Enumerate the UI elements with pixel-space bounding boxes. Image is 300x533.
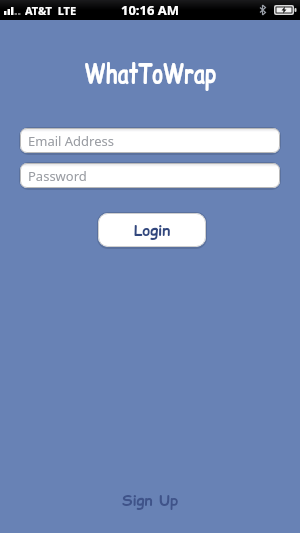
- staticText: AT&T LTE: [25, 3, 77, 18]
- button[interactable]: Sign Up: [118, 486, 182, 515]
- button[interactable]: Login: [98, 213, 206, 247]
- staticText: 10:16 AM: [121, 1, 180, 19]
- staticText: Login: [134, 220, 171, 241]
- button[interactable]: Email Address: [20, 128, 280, 153]
- staticText: Sign Up: [122, 490, 178, 511]
- staticText: Email Address: [28, 132, 114, 150]
- button[interactable]: Password: [20, 163, 280, 188]
- staticText: Password: [28, 167, 87, 185]
- staticText: WhatToWrap: [85, 56, 216, 92]
